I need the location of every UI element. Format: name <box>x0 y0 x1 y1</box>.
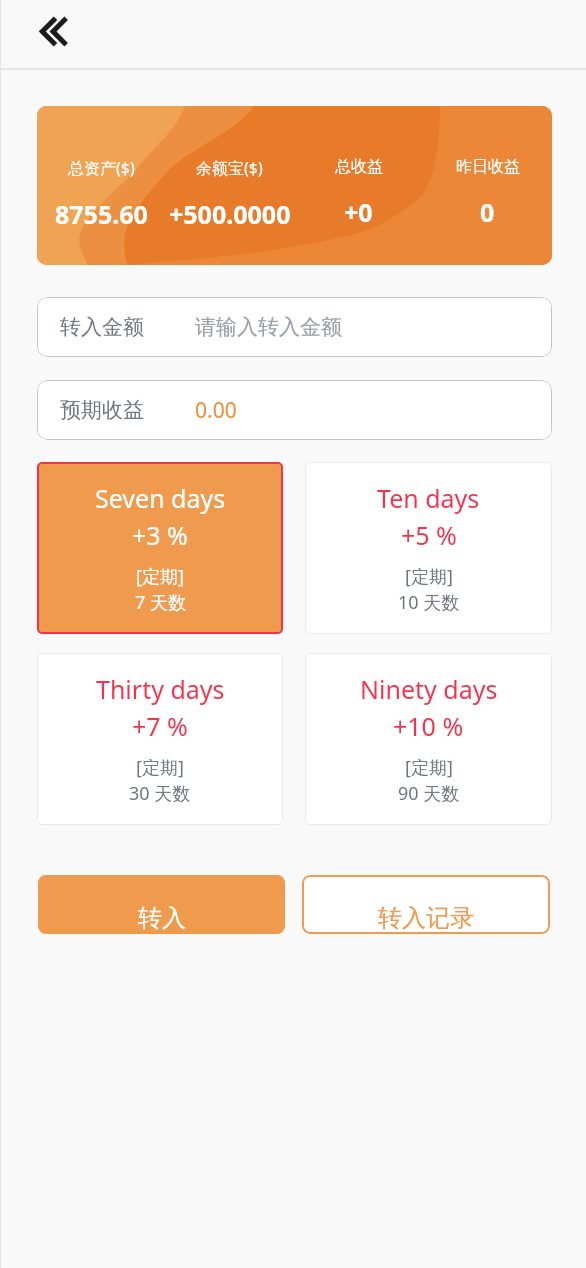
staticText: 0 <box>480 195 495 229</box>
staticText: Ninety days <box>360 672 498 706</box>
staticText: 10 天数 <box>398 590 460 615</box>
staticText: 转入记录 <box>378 903 474 933</box>
staticText: 0.00 <box>195 396 237 425</box>
staticText: 余额宝($) <box>196 157 263 179</box>
button[interactable]: 转入记录 <box>302 875 550 934</box>
staticText: [定期] <box>405 564 453 589</box>
button[interactable]: 总资产($) <box>37 106 552 265</box>
button[interactable]: 转入 <box>38 875 285 934</box>
staticText: 90 天数 <box>398 781 460 806</box>
button[interactable]: Seven days <box>37 462 283 634</box>
staticText: 昨日收益 <box>456 157 520 177</box>
staticText: [定期] <box>405 755 453 780</box>
staticText: +7 % <box>132 709 188 743</box>
staticText: 8755.60 <box>55 197 148 231</box>
button[interactable]: Ninety days <box>305 653 552 825</box>
staticText: +0 <box>344 195 373 229</box>
staticText: 转入 <box>138 903 186 933</box>
button[interactable]: 转入金额 <box>37 297 552 357</box>
staticText: 转入金额 <box>60 314 144 340</box>
staticText: 总收益 <box>335 157 383 177</box>
button[interactable]: 预期收益 <box>37 380 552 440</box>
staticText: +3 % <box>132 518 188 552</box>
staticText: Thirty days <box>96 672 225 706</box>
staticText: [定期] <box>136 564 184 589</box>
staticText: 总资产($) <box>68 157 135 179</box>
button[interactable]: Back <box>18 7 74 63</box>
staticText: +500.0000 <box>169 197 291 231</box>
staticText: 7 天数 <box>135 590 186 615</box>
staticText: 30 天数 <box>129 781 191 806</box>
staticText: 预期收益 <box>60 397 144 423</box>
button[interactable]: Ten days <box>305 462 552 634</box>
staticText: Seven days <box>95 481 226 515</box>
staticText: [定期] <box>136 755 184 780</box>
staticText: +5 % <box>401 518 457 552</box>
staticText: 请输入转入金额 <box>195 314 342 340</box>
staticText: Ten days <box>377 481 480 515</box>
button[interactable]: Thirty days <box>37 653 283 825</box>
staticText: +10 % <box>393 709 464 743</box>
